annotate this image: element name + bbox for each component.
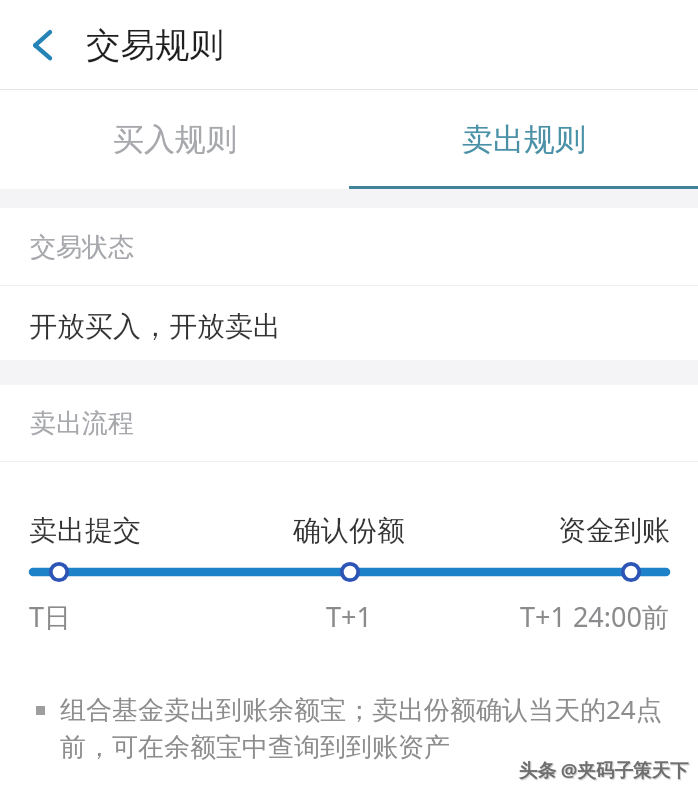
staticText: 卖出规则 xyxy=(462,120,586,159)
staticText: 交易状态 xyxy=(30,231,134,264)
button[interactable]: 买入规则 xyxy=(0,90,349,189)
staticText: 卖出提交 xyxy=(29,513,141,548)
staticText: T+1 xyxy=(326,598,372,635)
staticText: 卖出流程 xyxy=(30,407,134,440)
staticText: 确认份额 xyxy=(293,513,405,548)
staticText: T日 xyxy=(29,598,72,635)
button[interactable]: Back xyxy=(0,0,66,90)
staticText: 开放买入，开放卖出 xyxy=(29,309,281,344)
staticText: 组合基金卖出到账余额宝；卖出份额确认当天的24点前，可在余额宝中查询到到账资产 xyxy=(60,691,684,764)
staticText: 资金到账 xyxy=(558,513,670,548)
staticText: 头条 @夹码子策天下 xyxy=(519,757,689,782)
staticText: 交易规则 xyxy=(86,24,224,67)
button[interactable]: 卖出规则 xyxy=(349,90,698,189)
staticText: 买入规则 xyxy=(113,120,237,159)
staticText: T+1 24:00前 xyxy=(520,598,669,635)
staticText: 头条 @夹码子策天下 xyxy=(520,758,690,783)
